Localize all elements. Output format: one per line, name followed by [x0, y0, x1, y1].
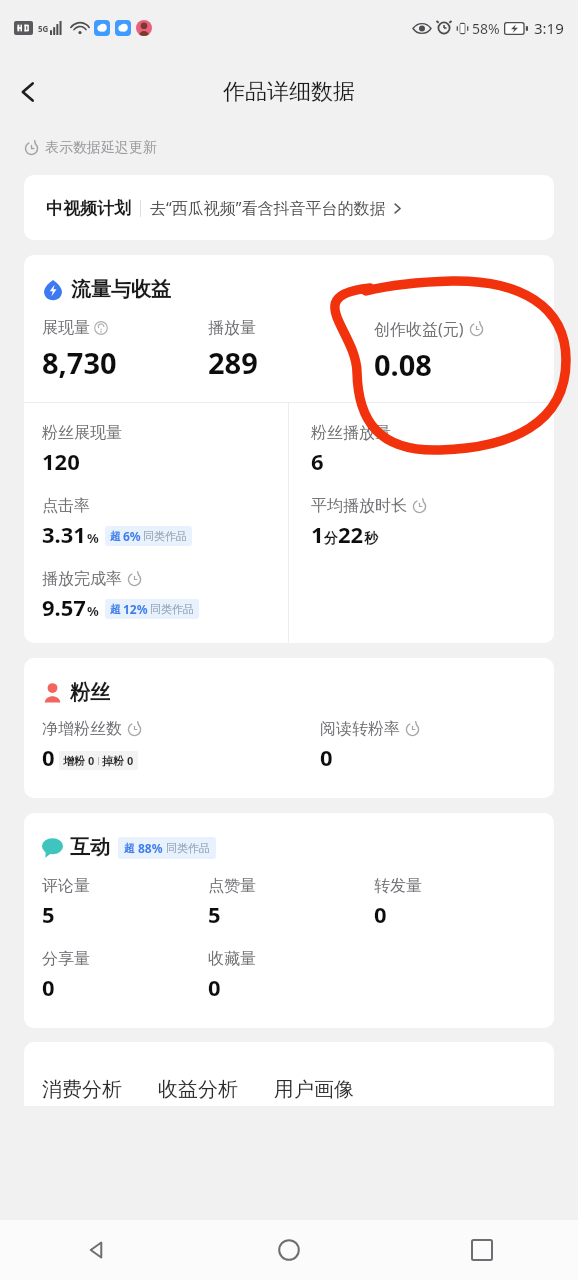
staticText: 58%: [472, 19, 500, 38]
staticText: 秒: [364, 530, 378, 548]
staticText: 0: [42, 742, 55, 772]
staticText: 88%: [138, 840, 163, 856]
staticText: 收益分析: [158, 1077, 238, 1102]
button[interactable]: 收益分析: [158, 1077, 238, 1106]
staticText: 超: [110, 602, 121, 616]
staticText: 互动: [70, 835, 110, 860]
staticText: 1: [311, 519, 324, 549]
staticText: 6: [311, 446, 324, 476]
button[interactable]: 消费分析: [42, 1077, 122, 1106]
staticText: 点赞量: [208, 876, 256, 896]
staticText: 粉丝展现量: [42, 423, 122, 443]
staticText: 中视频计划: [46, 198, 131, 219]
staticText: 5G: [38, 23, 49, 34]
staticText: 0: [88, 753, 95, 768]
button[interactable]: Home: [192, 1220, 385, 1280]
staticText: 展现量: [42, 318, 90, 338]
staticText: 0: [42, 972, 55, 1002]
staticText: 分享量: [42, 949, 90, 969]
staticText: 超: [110, 529, 121, 543]
button[interactable]: 中视频计划: [24, 175, 554, 240]
staticText: 同类作品: [143, 529, 187, 543]
staticText: 同类作品: [150, 602, 194, 616]
staticText: 0: [320, 742, 333, 772]
staticText: 9.57: [42, 592, 86, 622]
staticText: 平均播放时长: [311, 496, 407, 516]
staticText: 0: [127, 753, 134, 768]
staticText: 粉丝: [70, 680, 110, 705]
staticText: 增粉: [63, 754, 85, 768]
staticText: 3:19: [534, 18, 564, 38]
staticText: 0: [374, 899, 387, 929]
staticText: 消费分析: [42, 1077, 122, 1102]
staticText: 用户画像: [274, 1077, 354, 1102]
staticText: %: [87, 529, 99, 547]
staticText: 评论量: [42, 876, 90, 896]
button[interactable]: Back: [0, 64, 56, 120]
staticText: 流量与收益: [71, 277, 171, 302]
staticText: 0.08: [374, 345, 432, 384]
staticText: 8,730: [42, 343, 117, 382]
staticText: 12%: [123, 601, 148, 617]
staticText: 播放完成率: [42, 569, 122, 589]
staticText: 创作收益(元): [374, 318, 464, 340]
staticText: 播放量: [208, 318, 256, 338]
staticText: 点击率: [42, 496, 90, 516]
staticText: 289: [208, 343, 258, 382]
button[interactable]: Back: [0, 1220, 192, 1280]
staticText: %: [87, 602, 99, 620]
staticText: 掉粉: [102, 754, 124, 768]
staticText: 超: [124, 841, 135, 855]
staticText: 收藏量: [208, 949, 256, 969]
button[interactable]: Recent apps: [385, 1220, 578, 1280]
staticText: 5: [208, 899, 221, 929]
staticText: 阅读转粉率: [320, 719, 400, 739]
staticText: 同类作品: [166, 841, 210, 855]
staticText: 3.31: [42, 519, 86, 549]
staticText: 120: [42, 446, 80, 476]
staticText: 6%: [123, 528, 141, 544]
staticText: 22: [338, 519, 364, 549]
staticText: 净增粉丝数: [42, 719, 122, 739]
staticText: 5: [42, 899, 55, 929]
staticText: 作品详细数据: [223, 78, 355, 106]
button[interactable]: 用户画像: [274, 1077, 354, 1106]
staticText: 去“西瓜视频”看含抖音平台的数据: [150, 197, 386, 219]
staticText: 0: [208, 972, 221, 1002]
staticText: 表示数据延迟更新: [45, 139, 157, 157]
staticText: 粉丝播放量: [311, 423, 391, 443]
staticText: 分: [324, 530, 338, 548]
staticText: 转发量: [374, 876, 422, 896]
